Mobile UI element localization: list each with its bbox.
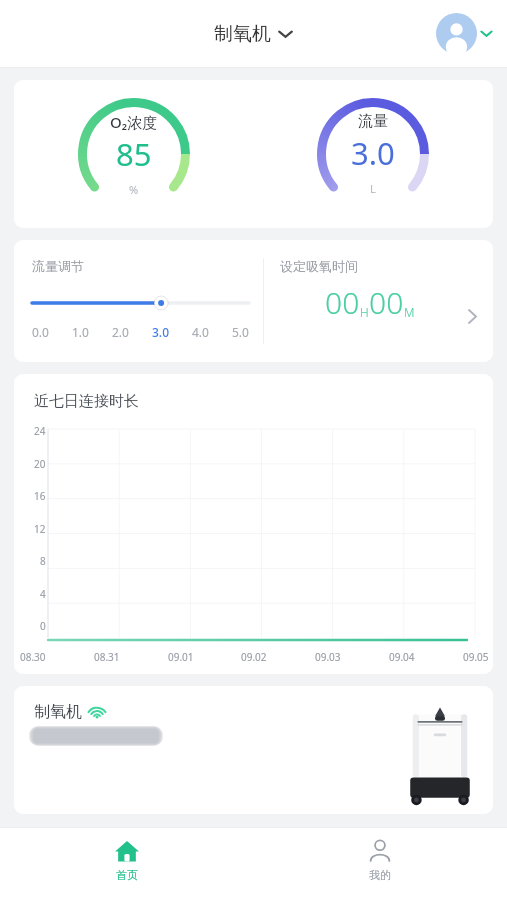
- staticText: 3.0: [351, 132, 395, 174]
- staticText: O₂浓度: [110, 112, 158, 132]
- staticText: 24: [34, 424, 46, 438]
- staticText: 0: [40, 619, 46, 633]
- staticText: 0.0: [32, 324, 49, 340]
- button[interactable]: O₂浓度: [14, 87, 253, 221]
- staticText: L: [370, 181, 376, 196]
- staticText: 制氧机: [214, 22, 271, 46]
- staticText: 00: [369, 282, 404, 323]
- staticText: 4: [40, 587, 46, 601]
- staticText: 85: [116, 133, 152, 175]
- other: WiFi connected: [87, 704, 107, 720]
- staticText: 09.04: [389, 650, 415, 664]
- button[interactable]: 流量调节: [14, 240, 263, 362]
- button[interactable]: 设定吸氧时间: [264, 240, 493, 362]
- staticText: 4.0: [192, 324, 209, 340]
- staticText: 20: [34, 457, 46, 471]
- button[interactable]: 流量: [253, 87, 493, 221]
- staticText: 09.05: [463, 650, 489, 664]
- staticText: M: [404, 304, 415, 320]
- staticText: 16: [34, 489, 46, 503]
- staticText: 09.01: [168, 650, 194, 664]
- staticText: 12: [34, 522, 46, 536]
- staticText: 08.30: [20, 650, 46, 664]
- staticText: H: [360, 304, 369, 320]
- button[interactable]: 制氧机: [208, 18, 299, 50]
- staticText: 制氧机: [34, 702, 82, 722]
- staticText: 设定吸氧时间: [280, 258, 358, 274]
- staticText: 3.0: [152, 324, 169, 340]
- staticText: 00: [325, 282, 360, 323]
- staticText: 09.02: [241, 650, 267, 664]
- button[interactable]: Account: [432, 9, 497, 58]
- button[interactable]: 制氧机: [14, 686, 493, 814]
- staticText: 8: [40, 554, 46, 568]
- staticText: 2.0: [112, 324, 129, 340]
- staticText: 近七日连接时长: [34, 392, 139, 411]
- staticText: 08.31: [94, 650, 120, 664]
- staticText: %: [129, 182, 139, 197]
- staticText: 首页: [116, 868, 138, 882]
- staticText: 09.03: [315, 650, 341, 664]
- staticText: 我的: [369, 868, 391, 882]
- staticText: 流量: [358, 112, 388, 131]
- button[interactable]: 我的: [253, 828, 507, 900]
- other: Open time setting: [463, 307, 481, 325]
- staticText: 流量调节: [32, 258, 84, 274]
- staticText: 5.0: [232, 324, 249, 340]
- button[interactable]: 首页: [0, 828, 253, 900]
- staticText: 1.0: [72, 324, 89, 340]
